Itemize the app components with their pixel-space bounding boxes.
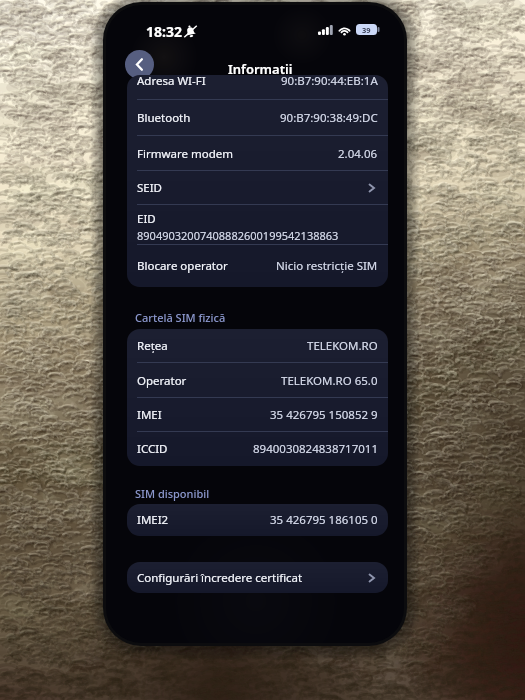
staticText: IMEI bbox=[137, 407, 162, 423]
button[interactable]: Bluetooth bbox=[127, 100, 388, 136]
staticText: 90:B7:90:38:49:DC bbox=[280, 110, 378, 126]
button[interactable]: Blocare operator bbox=[127, 245, 388, 287]
staticText: TELEKOM.RO 65.0 bbox=[281, 373, 378, 389]
staticText: 35 426795 186105 0 bbox=[270, 512, 378, 528]
staticText: Firmware modem bbox=[137, 146, 233, 162]
staticText: EID bbox=[137, 211, 156, 227]
staticText: 35 426795 150852 9 bbox=[270, 407, 378, 423]
staticText: Operator bbox=[137, 373, 187, 389]
staticText: 90:B7:90:44:EB:1A bbox=[281, 75, 378, 89]
button[interactable]: IMEI bbox=[127, 398, 388, 432]
staticText: 18:32 bbox=[146, 22, 182, 41]
staticText: SEID bbox=[137, 180, 163, 196]
staticText: 8940030824838717011 bbox=[253, 441, 378, 457]
button[interactable]: Back bbox=[125, 50, 154, 79]
staticText: Adresa WI-FI bbox=[137, 75, 206, 89]
staticText: 2.04.06 bbox=[338, 146, 378, 162]
staticText: SIM disponibil bbox=[135, 486, 210, 501]
staticText: Rețea bbox=[137, 338, 168, 354]
staticText: IMEI2 bbox=[137, 512, 169, 528]
staticText: ICCID bbox=[137, 441, 168, 457]
button[interactable]: Adresa WI-FI bbox=[127, 75, 388, 100]
staticText: Bluetooth bbox=[137, 110, 191, 126]
staticText: Blocare operator bbox=[137, 258, 228, 274]
staticText: Cartelă SIM fizică bbox=[135, 310, 226, 325]
button[interactable]: SEID bbox=[127, 171, 388, 205]
button[interactable]: EID bbox=[127, 205, 388, 245]
button[interactable]: Operator bbox=[127, 363, 388, 398]
staticText: Configurări încredere certificat bbox=[137, 570, 303, 586]
button[interactable]: Configurări încredere certificat bbox=[127, 562, 388, 593]
button[interactable]: ICCID bbox=[127, 432, 388, 466]
staticText: Informații bbox=[228, 60, 293, 78]
staticText: 39 bbox=[362, 25, 371, 35]
button[interactable]: IMEI2 bbox=[127, 504, 388, 536]
staticText: TELEKOM.RO bbox=[307, 338, 378, 354]
staticText: Nicio restricție SIM bbox=[276, 258, 378, 274]
button[interactable]: Rețea bbox=[127, 329, 388, 363]
staticText: 89049032007408882600199542138863 bbox=[137, 228, 339, 243]
button[interactable]: Firmware modem bbox=[127, 136, 388, 171]
